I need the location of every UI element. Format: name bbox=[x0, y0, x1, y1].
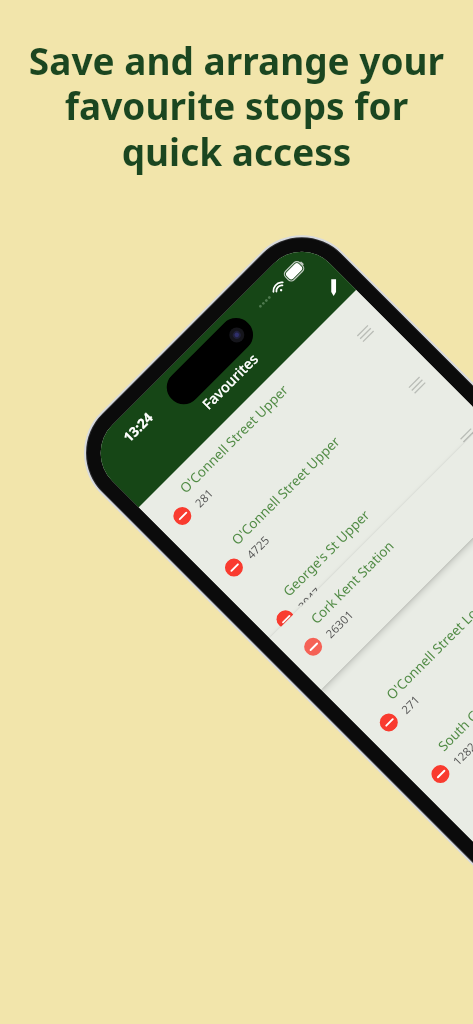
staticText: 4725 bbox=[243, 532, 273, 563]
staticText: Save and arrange your favourite stops fo… bbox=[0, 35, 473, 177]
staticText: 3047 bbox=[295, 584, 325, 614]
button[interactable]: Reorder O'Connell Street Upper bbox=[402, 371, 430, 399]
staticText: George's St Upper bbox=[279, 506, 373, 600]
button[interactable]: Remove O'Connell Street Upper bbox=[170, 503, 195, 529]
button[interactable]: Remove South Great George's St bbox=[397, 548, 473, 817]
staticText: 13:24 bbox=[119, 408, 157, 446]
button[interactable]: Edit bbox=[317, 269, 348, 300]
staticText: O'Connell Street Upper bbox=[228, 432, 344, 548]
button[interactable]: Remove Cork Kent Station bbox=[300, 634, 326, 659]
button[interactable]: Remove George's St Upper bbox=[242, 393, 473, 662]
staticText: 281 bbox=[191, 485, 217, 511]
button[interactable]: Reorder O'Connell Street Upper bbox=[351, 319, 379, 348]
button[interactable]: Remove O'Connell Street Lower bbox=[345, 496, 473, 765]
button[interactable]: Remove South Great George's St bbox=[428, 761, 453, 787]
staticText: 1282 bbox=[450, 739, 473, 769]
button[interactable]: Remove Patrick Street bbox=[448, 599, 473, 869]
button[interactable]: Remove O'Connell Street Lower bbox=[376, 710, 402, 735]
button[interactable]: Remove O'Connell Street Upper bbox=[190, 341, 459, 611]
staticText: South Great George's St bbox=[434, 635, 473, 755]
button[interactable]: Reorder George's St Upper bbox=[454, 423, 473, 451]
staticText: O'Connell Street Lower bbox=[382, 587, 473, 703]
staticText: 26301 bbox=[322, 607, 357, 642]
button[interactable]: Remove George's St Upper bbox=[273, 606, 298, 632]
staticText: Cork Kent Station bbox=[307, 536, 398, 628]
staticText: O'Connell Street Upper bbox=[176, 381, 292, 497]
button[interactable]: Remove Cork Kent Station bbox=[269, 420, 473, 690]
button[interactable]: Remove O'Connell Street Upper bbox=[221, 555, 247, 580]
button[interactable]: Remove O'Connell Street Upper bbox=[138, 290, 408, 559]
staticText: 271 bbox=[398, 692, 423, 717]
staticText: Favourites bbox=[198, 349, 262, 413]
